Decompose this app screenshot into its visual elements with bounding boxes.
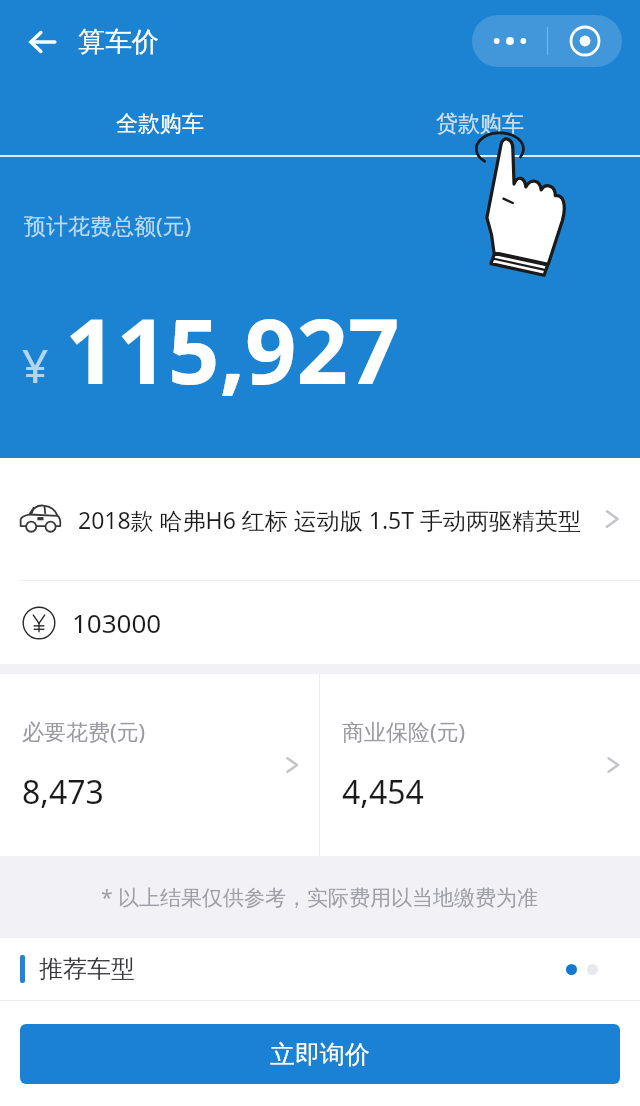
other: More options: [472, 15, 547, 67]
button[interactable]: 必要花费(元): [0, 674, 319, 856]
staticText: 商业保险(元): [342, 716, 466, 746]
staticText: 预计花费总额(元): [24, 210, 192, 240]
other: Close: [548, 15, 622, 67]
staticText: 立即询价: [270, 1039, 370, 1070]
button[interactable]: 103000: [0, 581, 640, 664]
button[interactable]: 商业保险(元): [320, 674, 640, 856]
button[interactable]: 立即询价: [20, 1024, 620, 1084]
staticText: 必要花费(元): [22, 716, 146, 746]
staticText: 2018款 哈弗H6 红标 运动版 1.5T 手动两驱精英型: [78, 504, 590, 535]
staticText: 全款购车: [116, 110, 204, 138]
staticText: 4,454: [342, 770, 424, 814]
button[interactable]: 推荐车型: [0, 938, 640, 1000]
staticText: * 以上结果仅供参考，实际费用以当地缴费为准: [101, 883, 539, 912]
staticText: 贷款购车: [436, 110, 524, 138]
staticText: 算车价: [78, 25, 159, 59]
button[interactable]: 2018款 哈弗H6 红标 运动版 1.5T 手动两驱精英型: [0, 458, 640, 580]
staticText: ¥: [22, 334, 49, 397]
staticText: 推荐车型: [39, 954, 135, 984]
button[interactable]: 全款购车: [0, 94, 320, 154]
button[interactable]: More options: [472, 15, 622, 67]
button[interactable]: 贷款购车: [320, 94, 640, 154]
button[interactable]: Back: [18, 18, 66, 66]
staticText: 8,473: [22, 770, 104, 814]
staticText: 115,927: [65, 288, 400, 411]
staticText: 103000: [72, 605, 162, 640]
